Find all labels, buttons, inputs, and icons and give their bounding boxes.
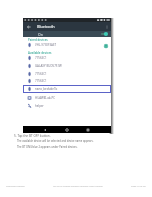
button[interactable]: Recents xyxy=(85,127,90,132)
staticText: 77563C1 xyxy=(35,56,47,60)
button[interactable]: Device settings xyxy=(103,43,108,48)
staticText: 77563C1 xyxy=(35,72,47,76)
staticText: GALAXY BUD5751W xyxy=(35,64,62,68)
button[interactable]: 77563C1 xyxy=(23,77,111,85)
button[interactable]: HUAWEI-ab-PC xyxy=(23,94,111,102)
staticText: 5. Tap the BT OFF button. xyxy=(14,134,51,138)
button[interactable]: Back xyxy=(26,24,32,30)
staticText: helper xyxy=(35,104,44,108)
staticText: Bluetooth xyxy=(37,24,55,29)
staticText: The BT ON/Value 2 appears under Paired d… xyxy=(17,145,78,149)
staticText: On xyxy=(38,32,43,37)
staticText: Paired devices xyxy=(28,38,48,42)
staticText: HUAWEI-ab-PC xyxy=(35,96,56,100)
staticText: Available devices xyxy=(28,51,52,55)
button[interactable]: nano_bedside1b xyxy=(23,85,111,93)
staticText: 77563C1 xyxy=(35,79,47,83)
staticText: VHL-9730F3AE7 xyxy=(35,43,57,47)
button[interactable]: Home xyxy=(64,127,69,132)
staticText: Copyright Taiwan xyxy=(6,185,25,188)
button[interactable]: 77563C1 xyxy=(23,70,111,78)
button[interactable]: More options xyxy=(104,24,110,30)
staticText: Page 12 of 30 xyxy=(131,185,146,188)
staticText: MT-4013 Mobile Keypad Wireless User Manu… xyxy=(53,185,103,188)
staticText: nano_bedside1b xyxy=(35,87,58,91)
button[interactable]: 77563C1 xyxy=(23,54,111,62)
button[interactable]: GALAXY BUD5751W xyxy=(23,62,111,70)
button[interactable]: Bluetooth toggle xyxy=(100,31,108,37)
button[interactable]: VHL-9730F3AE7 xyxy=(23,41,111,49)
button[interactable]: helper xyxy=(23,102,111,110)
button[interactable]: Back xyxy=(42,127,47,132)
staticText: The available device will be selected an… xyxy=(17,139,94,143)
